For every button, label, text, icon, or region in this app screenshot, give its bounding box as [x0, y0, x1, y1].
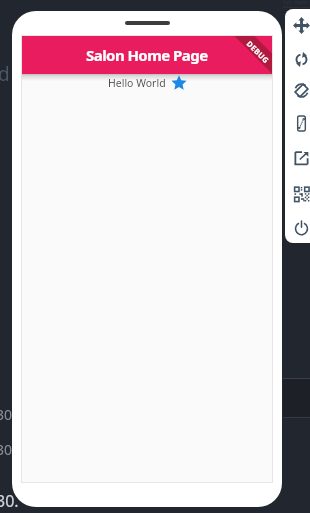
button[interactable]: Rotate: [293, 51, 310, 68]
button[interactable]: Power: [293, 219, 310, 236]
button[interactable]: Move: [293, 17, 310, 34]
staticText: 30: [0, 405, 13, 424]
button[interactable]: Resize screen: [293, 115, 310, 132]
button[interactable]: Salon Home Page: [21, 35, 273, 74]
staticText: build: [283, 4, 293, 9]
staticText: 30: [0, 440, 13, 459]
staticText: run main :: [283, 0, 310, 6]
button[interactable]: QR code: [293, 185, 310, 202]
staticText: Hello World: [108, 76, 166, 90]
staticText: d: [0, 61, 10, 87]
staticText: Salon Home Page: [86, 45, 208, 65]
staticText: 30.: [0, 490, 19, 512]
staticText: DEBUG: [245, 39, 271, 65]
button[interactable]: Screen rotation: [293, 82, 310, 99]
button[interactable]: Open in new window: [293, 149, 310, 166]
